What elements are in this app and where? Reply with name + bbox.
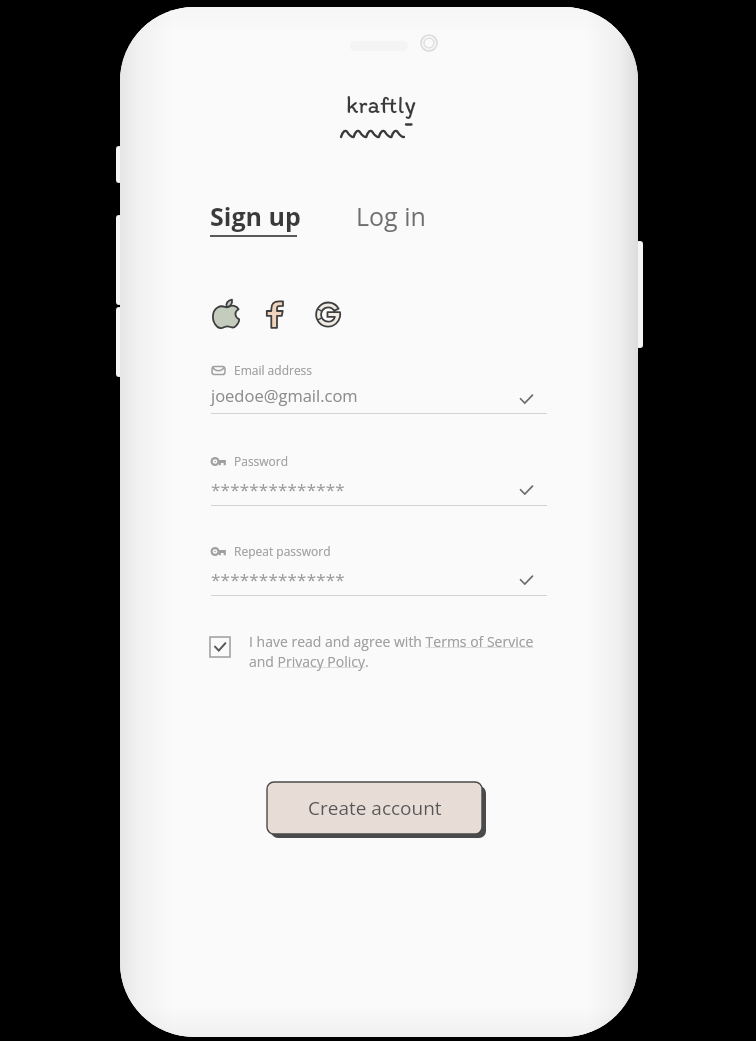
staticText: Sign up	[210, 199, 301, 233]
staticText: Repeat password	[234, 543, 331, 559]
button[interactable]: Sign up with Apple	[211, 299, 241, 329]
button[interactable]: Sign up with Facebook	[262, 299, 292, 329]
staticText: **************	[211, 478, 345, 501]
staticText: Email address	[234, 362, 313, 378]
staticText: Create account	[308, 795, 442, 821]
staticText: joedoe@gmail.com	[211, 384, 358, 406]
button[interactable]: Sign up with Google	[315, 300, 343, 328]
button[interactable]: Create account	[267, 782, 482, 834]
button[interactable]: Sign up	[209, 199, 302, 237]
staticText: Password	[234, 453, 289, 469]
staticText: kraftly	[346, 90, 416, 119]
button[interactable]: I have read and agree with Terms of Serv…	[210, 632, 550, 671]
staticText: I have read and agree with Terms of Serv…	[249, 632, 550, 671]
button[interactable]: Log in	[355, 199, 427, 233]
staticText: **************	[211, 568, 345, 591]
staticText: Log in	[356, 199, 426, 233]
